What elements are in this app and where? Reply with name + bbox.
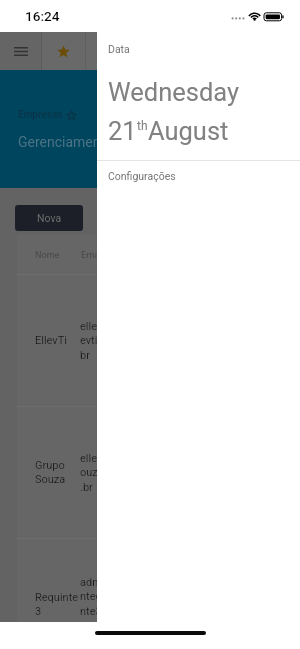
button[interactable]: Configurações: [108, 170, 176, 182]
staticText: Empresas: [18, 109, 63, 121]
button[interactable]: Grupo Souza: [17, 407, 300, 538]
staticText: Email: [81, 249, 104, 260]
staticText: Nome: [35, 249, 60, 260]
staticText: 21: [108, 116, 137, 146]
staticText: th: [137, 119, 148, 133]
button[interactable]: Data: [108, 43, 130, 55]
staticText: Grupo Souza: [35, 459, 66, 486]
staticText: ellev@ evti.com. br: [80, 320, 125, 362]
button[interactable]: Requinte 3: [17, 539, 300, 622]
staticText: ellev@ ouza.com .br: [80, 452, 129, 494]
button[interactable]: Favorites: [42, 32, 85, 70]
staticText: Gerenciamento de Empresas: [18, 134, 198, 150]
staticText: August: [148, 116, 229, 146]
button[interactable]: Menu: [0, 32, 41, 70]
staticText: Wednesday: [108, 77, 240, 107]
staticText: admin@ ntegra nte3.com. br: [80, 576, 130, 622]
staticText: 16:24: [25, 8, 60, 24]
staticText: EllevTi: [35, 334, 67, 347]
staticText: Requinte 3: [35, 591, 79, 618]
button[interactable]: Nova: [15, 205, 83, 231]
staticText: Nova: [37, 212, 62, 224]
button[interactable]: EllevTi: [17, 275, 300, 406]
